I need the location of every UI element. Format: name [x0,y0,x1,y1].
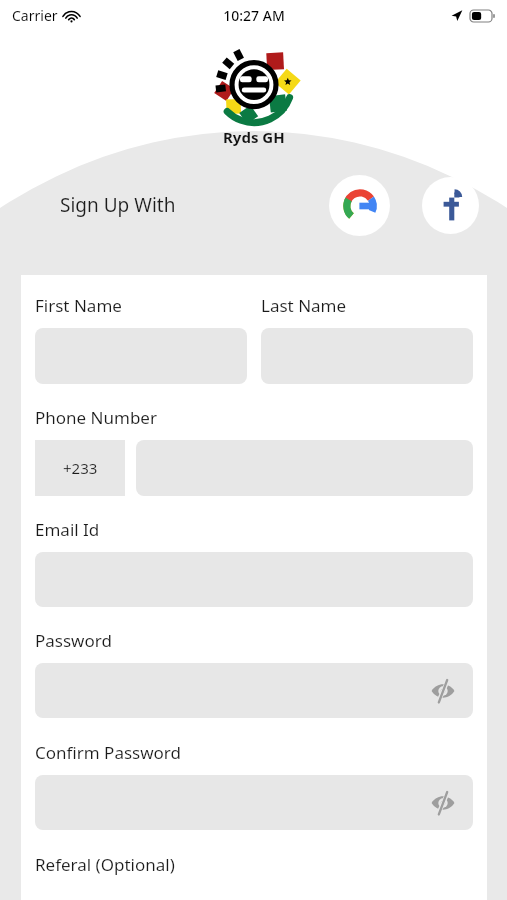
staticText: Email Id [35,518,100,541]
button[interactable]: Show password [35,775,473,830]
button[interactable]: Show password [426,674,460,708]
button[interactable]: Sign up with Facebook [422,177,479,234]
button[interactable]: +233 [35,440,125,496]
button[interactable]: Sign up with Google [329,175,390,236]
staticText: First Name [35,294,122,317]
button[interactable]: Show password [35,663,473,718]
staticText: Carrier [12,6,58,25]
staticText: Last Name [261,294,347,317]
staticText: Sign Up With [60,192,176,218]
staticText: 10:27 AM [223,6,285,25]
staticText: Password [35,629,112,652]
staticText: Confirm Password [35,741,181,764]
button[interactable]: Show password [426,786,460,820]
staticText: Ryds GH [223,127,285,147]
staticText: Phone Number [35,406,157,429]
staticText: Referal (Optional) [35,853,175,876]
staticText: +233 [63,458,98,478]
